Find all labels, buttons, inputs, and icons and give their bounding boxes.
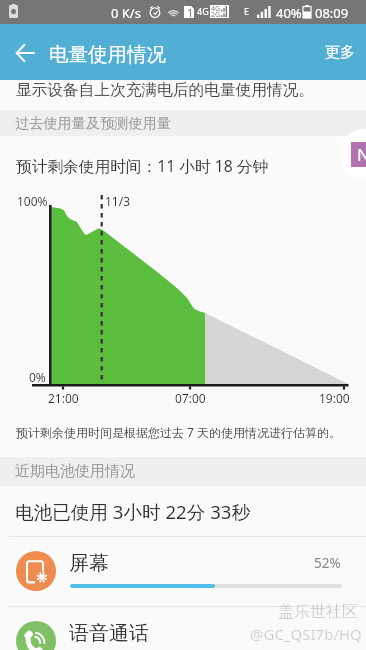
staticText: E — [244, 5, 250, 17]
staticText: 预计剩余使用时间：11 小时 18 分钟 — [16, 155, 269, 176]
button[interactable]: 语音通话 — [0, 606, 366, 650]
staticText: 52% — [314, 554, 341, 572]
button[interactable]: Back — [2, 30, 48, 76]
staticText: 电池已使用 3小时 22分 33秒 — [15, 499, 251, 524]
button[interactable]: 更多 — [314, 27, 366, 78]
staticText: 4G — [211, 4, 221, 14]
staticText: 2G — [211, 10, 221, 20]
button[interactable]: OneNote — [339, 129, 366, 180]
staticText: 100% — [17, 193, 48, 209]
staticText: N — [357, 143, 366, 166]
staticText: 更多 — [325, 43, 355, 62]
staticText: 07:00 — [175, 390, 206, 406]
staticText: 11/3 — [105, 193, 131, 209]
staticText: 盖乐世社区 — [278, 602, 358, 622]
staticText: @GC_QSI7b/HQ — [250, 624, 362, 644]
staticText: 近期电池使用情况 — [15, 462, 135, 481]
staticText: 0 K/s — [111, 4, 141, 22]
staticText: 电量使用情况 — [49, 42, 166, 67]
staticText: 40% — [276, 4, 302, 22]
button[interactable]: 屏幕 — [0, 536, 366, 606]
staticText: 0% — [29, 369, 46, 385]
staticText: 19:00 — [319, 390, 350, 406]
staticText: 1 — [187, 5, 194, 20]
staticText: 过去使用量及预测使用量 — [15, 114, 172, 132]
staticText: 预计剩余使用时间是根据您过去 7 天的使用情况进行估算的。 — [16, 424, 342, 440]
staticText: 08:09 — [315, 4, 349, 22]
staticText: 21:00 — [48, 390, 79, 406]
staticText: 4G — [197, 5, 209, 17]
staticText: 屏幕 — [69, 551, 109, 576]
staticText: 语音通话 — [69, 621, 149, 646]
staticText: 显示设备自上次充满电后的电量使用情况。 — [16, 80, 315, 100]
